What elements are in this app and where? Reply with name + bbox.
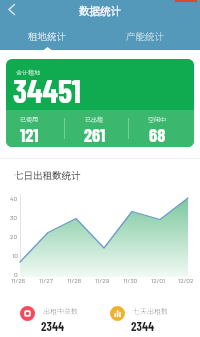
staticText: 12/01 (151, 276, 166, 284)
staticText: 已出租 (85, 115, 104, 124)
staticText: 11/29 (95, 276, 110, 284)
staticText: 11/27 (39, 276, 53, 284)
staticText: 2344 (131, 318, 155, 333)
staticText: 空闲中 (148, 115, 167, 124)
staticText: 2344 (41, 318, 65, 333)
staticText: 121 (20, 123, 39, 145)
staticText: 68 (149, 123, 166, 145)
button[interactable]: 租地统计 (17, 26, 77, 46)
button[interactable]: 空闲中 (134, 110, 181, 147)
staticText: 产能统计 (126, 29, 165, 43)
staticText: 七日出租数统计 (14, 168, 81, 182)
staticText: 34451 (13, 71, 81, 109)
staticText: 合计租地 (16, 68, 41, 77)
staticText: 40 (10, 194, 18, 202)
staticText: 10 (12, 251, 18, 259)
button[interactable] (4, 1, 20, 19)
staticText: 租地统计 (28, 29, 67, 43)
staticText: 已使用 (20, 115, 39, 124)
staticText: 261 (84, 123, 106, 145)
staticText: 11/28 (67, 276, 82, 284)
staticText: 30 (10, 213, 18, 221)
button[interactable]: 出租中总数 (20, 304, 105, 336)
button[interactable]: 已出租 (71, 110, 118, 147)
staticText: 数据统计 (79, 3, 121, 18)
staticText: 出租中总数 (43, 306, 78, 316)
staticText: 0 (14, 270, 18, 278)
staticText: 11/30 (123, 276, 138, 284)
button[interactable]: 产能统计 (115, 26, 175, 46)
button[interactable]: 七天出租数 (110, 304, 195, 336)
staticText: 20 (10, 232, 18, 240)
button[interactable]: 已使用 (6, 110, 53, 147)
button[interactable]: 合计租地 (6, 59, 194, 147)
staticText: 11/26 (11, 276, 26, 284)
staticText: 七天出租数 (133, 306, 168, 316)
staticText: 12/02 (178, 276, 194, 284)
